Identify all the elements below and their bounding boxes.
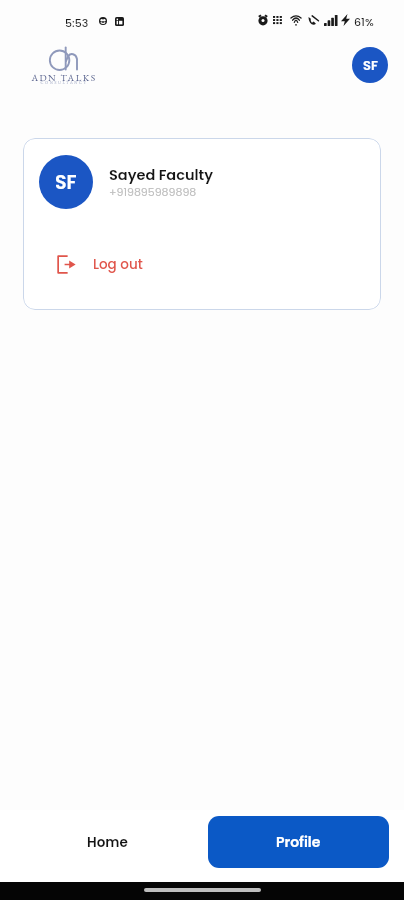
staticText: Profile bbox=[276, 832, 321, 852]
staticText: Log out bbox=[93, 255, 143, 274]
button[interactable]: Account bbox=[352, 47, 388, 83]
button[interactable]: Profile bbox=[208, 816, 389, 868]
staticText: 61% bbox=[354, 14, 374, 29]
button[interactable]: Home bbox=[16, 816, 198, 868]
staticText: 5:53 bbox=[65, 15, 89, 30]
staticText: SF bbox=[363, 56, 378, 74]
staticText: +919895989898 bbox=[109, 184, 197, 199]
staticText: SF bbox=[55, 169, 77, 196]
staticText: ADN TALKS bbox=[28, 71, 100, 83]
staticText: CONSULTANCY bbox=[28, 80, 100, 85]
button[interactable]: ADN Talks home bbox=[28, 44, 100, 86]
staticText: Home bbox=[87, 833, 128, 852]
button[interactable]: Log out bbox=[47, 246, 187, 282]
staticText: Sayed Faculty bbox=[109, 165, 213, 185]
